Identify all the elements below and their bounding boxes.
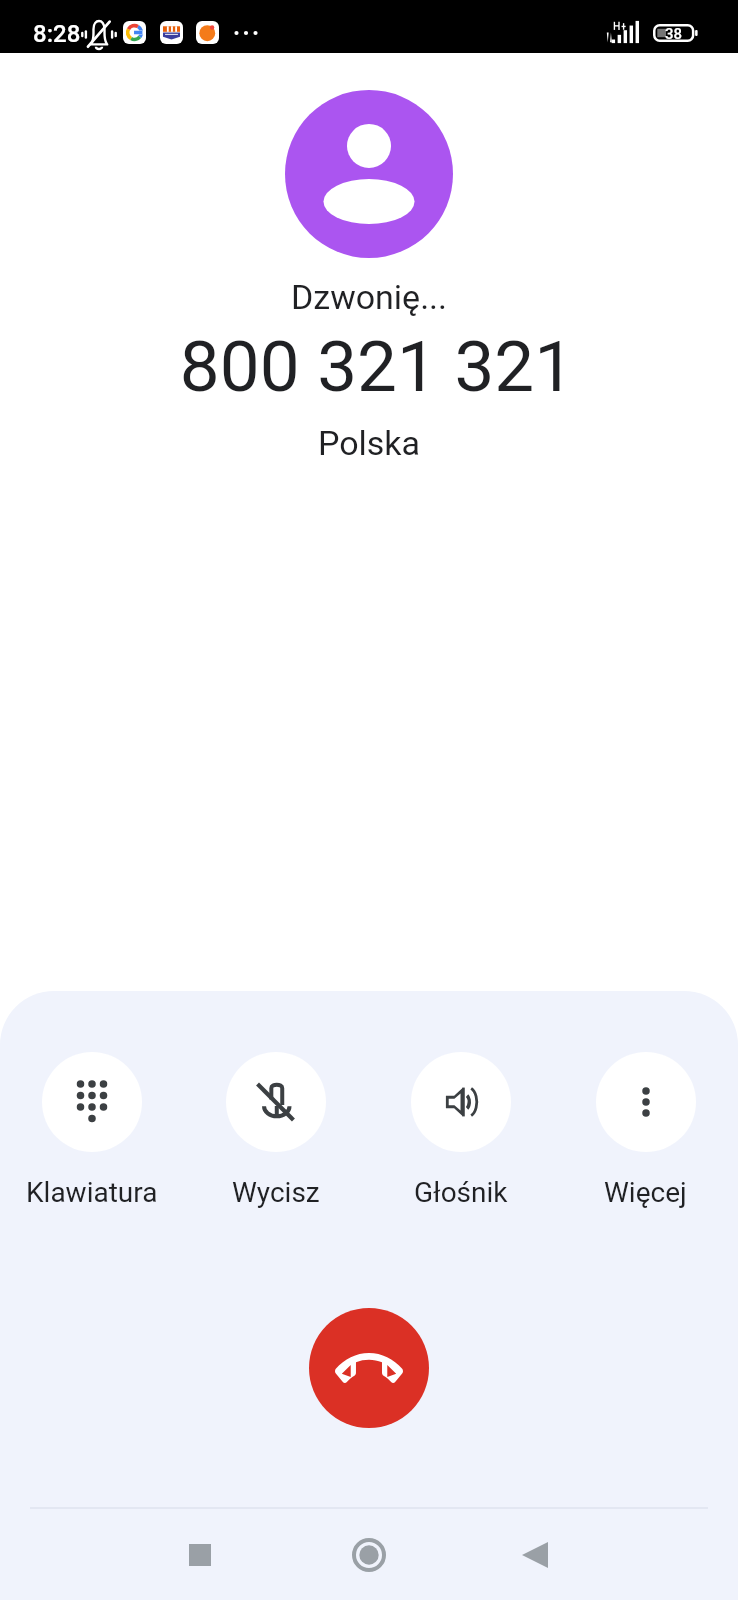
button[interactable]: Wycisz bbox=[184, 1052, 368, 1209]
staticText: 8:28 bbox=[33, 20, 81, 48]
staticText: Klawiatura bbox=[26, 1176, 158, 1209]
button[interactable]: Home bbox=[339, 1525, 399, 1585]
staticText: Dzwonię... bbox=[0, 277, 738, 317]
button[interactable]: Więcej bbox=[553, 1052, 738, 1209]
button[interactable]: Głośnik bbox=[368, 1052, 553, 1209]
staticText: Wycisz bbox=[232, 1176, 320, 1209]
staticText: Głośnik bbox=[414, 1176, 508, 1209]
staticText: 38 bbox=[665, 25, 683, 43]
staticText: Więcej bbox=[604, 1176, 687, 1209]
button[interactable]: Klawiatura bbox=[0, 1052, 184, 1209]
button[interactable]: Recent apps bbox=[170, 1525, 230, 1585]
staticText: 800 321 321 bbox=[8, 325, 738, 408]
button[interactable]: End call bbox=[309, 1308, 429, 1428]
button[interactable]: Back bbox=[505, 1525, 565, 1585]
staticText: Polska bbox=[0, 423, 738, 463]
